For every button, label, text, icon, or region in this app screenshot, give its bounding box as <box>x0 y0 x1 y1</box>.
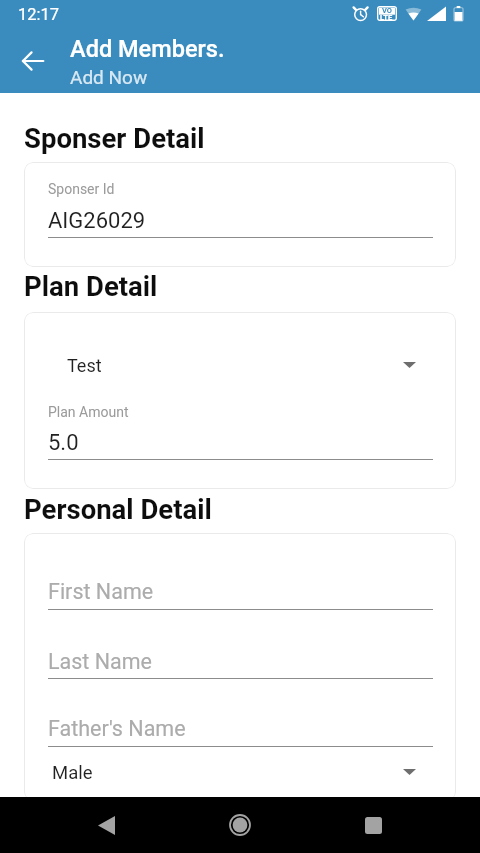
staticText: Sponser Id <box>48 181 115 197</box>
staticText: 12:17 <box>18 5 60 24</box>
staticText: Add Members. <box>70 35 225 63</box>
staticText: Personal Detail <box>24 493 212 525</box>
staticText: Last Name <box>48 649 153 674</box>
button[interactable]: Back <box>12 40 54 82</box>
button[interactable]: Recent apps <box>349 801 397 849</box>
staticText: Male <box>52 762 93 784</box>
button[interactable]: Back <box>82 801 130 849</box>
staticText: Plan Detail <box>24 270 158 302</box>
button[interactable]: Test <box>24 352 456 379</box>
staticText: Test <box>67 355 102 376</box>
staticText: Sponser Detail <box>24 122 205 154</box>
staticText: Add Now <box>70 66 148 88</box>
staticText: VO <box>382 6 393 15</box>
staticText: First Name <box>48 579 154 604</box>
staticText: AIG26029 <box>48 208 146 234</box>
staticText: LTE <box>380 13 393 22</box>
button[interactable]: Home <box>216 801 264 849</box>
staticText: 5.0 <box>48 430 79 456</box>
button[interactable]: Male <box>24 759 456 786</box>
staticText: Father's Name <box>48 716 186 741</box>
staticText: Plan Amount <box>48 404 129 420</box>
